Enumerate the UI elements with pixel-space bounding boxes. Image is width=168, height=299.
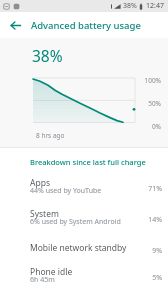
staticText: Advanced battery usage <box>31 19 141 32</box>
staticText: Breakdown since last full charge <box>30 157 146 167</box>
staticText: 12:47 <box>146 1 164 11</box>
staticText: 38% <box>123 1 137 11</box>
staticText: Apps <box>30 177 50 189</box>
staticText: 6h 45m <box>30 275 55 285</box>
staticText: 14% <box>141 215 162 225</box>
staticText: 9% <box>141 246 162 256</box>
button[interactable]: System <box>0 208 168 232</box>
staticText: 38% <box>32 45 63 66</box>
button[interactable]: Phone idle <box>0 266 168 290</box>
button[interactable]: Back <box>0 12 30 38</box>
staticText: 8 hrs ago <box>36 131 65 140</box>
staticText: Mobile network standby <box>30 242 127 254</box>
staticText: 6% used by System Android <box>30 217 121 227</box>
staticText: 5% <box>141 273 162 283</box>
button[interactable]: Mobile network standby <box>0 242 168 264</box>
staticText: System <box>30 208 59 220</box>
button[interactable]: Apps <box>0 177 168 201</box>
staticText: 50% <box>139 99 161 108</box>
staticText: 0% <box>139 122 161 131</box>
staticText: 44% used by YouTube <box>30 186 102 196</box>
staticText: 100% <box>139 76 161 85</box>
staticText: Phone idle <box>30 266 73 278</box>
staticText: 71% <box>141 184 162 194</box>
